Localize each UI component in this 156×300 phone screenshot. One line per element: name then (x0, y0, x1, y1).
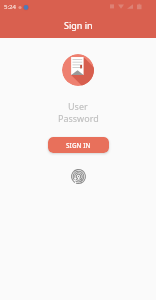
button[interactable]: SIGN IN (48, 137, 109, 153)
button[interactable]: Fingerprint sign in (68, 166, 88, 186)
staticText: 5:24 (4, 3, 16, 11)
staticText: SIGN IN (66, 141, 91, 150)
staticText: User (68, 100, 88, 112)
staticText: Password (58, 112, 99, 124)
staticText: Sign in (64, 19, 93, 31)
